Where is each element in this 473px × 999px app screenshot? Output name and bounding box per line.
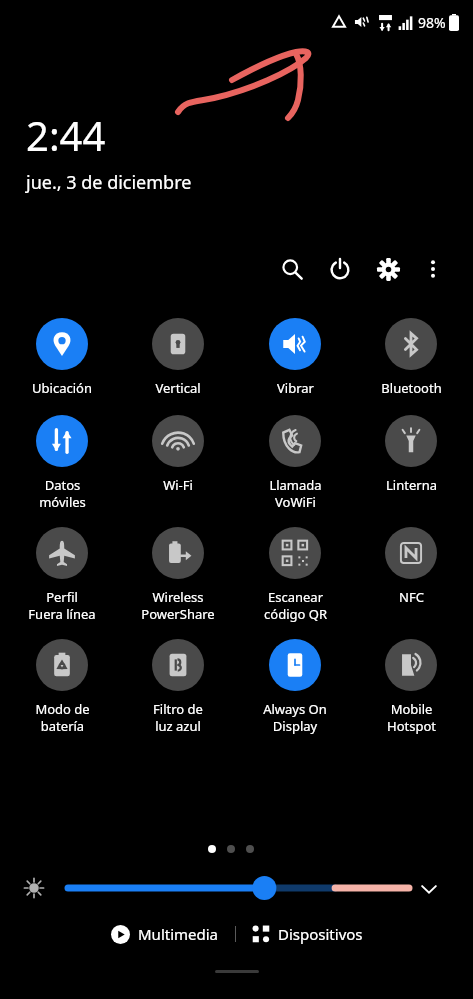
- button[interactable]: Vibrar: [241, 318, 349, 397]
- button[interactable]: Mobile Hotspot: [357, 639, 465, 735]
- button[interactable]: Power: [319, 248, 361, 290]
- button[interactable]: Wi-Fi: [124, 415, 232, 494]
- staticText: Llamada VoWiFi: [269, 476, 322, 511]
- button[interactable]: Llamada VoWiFi: [241, 415, 349, 511]
- staticText: Escanear código QR: [264, 588, 327, 623]
- staticText: Perfil Fuera línea: [28, 588, 96, 623]
- staticText: Mobile Hotspot: [387, 700, 436, 735]
- button[interactable]: Modo de batería: [8, 639, 116, 735]
- button[interactable]: More options: [415, 251, 451, 287]
- button[interactable]: Dispositivos: [246, 918, 369, 950]
- staticText: 2:44: [26, 108, 106, 162]
- button[interactable]: Linterna: [357, 415, 465, 494]
- button[interactable]: Perfil Fuera línea: [8, 527, 116, 623]
- staticText: Modo de batería: [35, 700, 90, 735]
- button[interactable]: Always On Display: [241, 639, 349, 735]
- button[interactable]: Search: [271, 248, 313, 290]
- button[interactable]: Ubicación: [8, 318, 116, 397]
- button[interactable]: Bluetooth: [357, 318, 465, 397]
- staticText: Bluetooth: [381, 379, 442, 397]
- staticText: Datos móviles: [39, 476, 86, 511]
- staticText: Linterna: [386, 476, 437, 494]
- button[interactable]: Settings: [367, 248, 409, 290]
- button[interactable]: Datos móviles: [8, 415, 116, 511]
- staticText: Wireless PowerShare: [141, 588, 215, 623]
- staticText: Vertical: [155, 379, 201, 397]
- button[interactable]: NFC: [357, 527, 465, 606]
- staticText: Vibrar: [277, 379, 314, 397]
- staticText: 98%: [418, 13, 446, 32]
- button[interactable]: Escanear código QR: [241, 527, 349, 623]
- staticText: NFC: [399, 588, 424, 606]
- button[interactable]: Expand: [412, 872, 446, 906]
- staticText: Always On Display: [263, 700, 327, 735]
- staticText: Multimedia: [138, 924, 219, 944]
- staticText: Filtro de luz azul: [153, 700, 203, 735]
- button[interactable]: Vertical: [124, 318, 232, 397]
- button[interactable]: Filtro de luz azul: [124, 639, 232, 735]
- button[interactable]: Multimedia: [105, 918, 225, 950]
- button[interactable]: [66, 881, 411, 895]
- staticText: Dispositivos: [278, 924, 363, 944]
- staticText: Wi-Fi: [163, 476, 193, 494]
- staticText: jue., 3 de diciembre: [26, 170, 192, 195]
- button[interactable]: Wireless PowerShare: [124, 527, 232, 623]
- staticText: Ubicación: [32, 379, 92, 397]
